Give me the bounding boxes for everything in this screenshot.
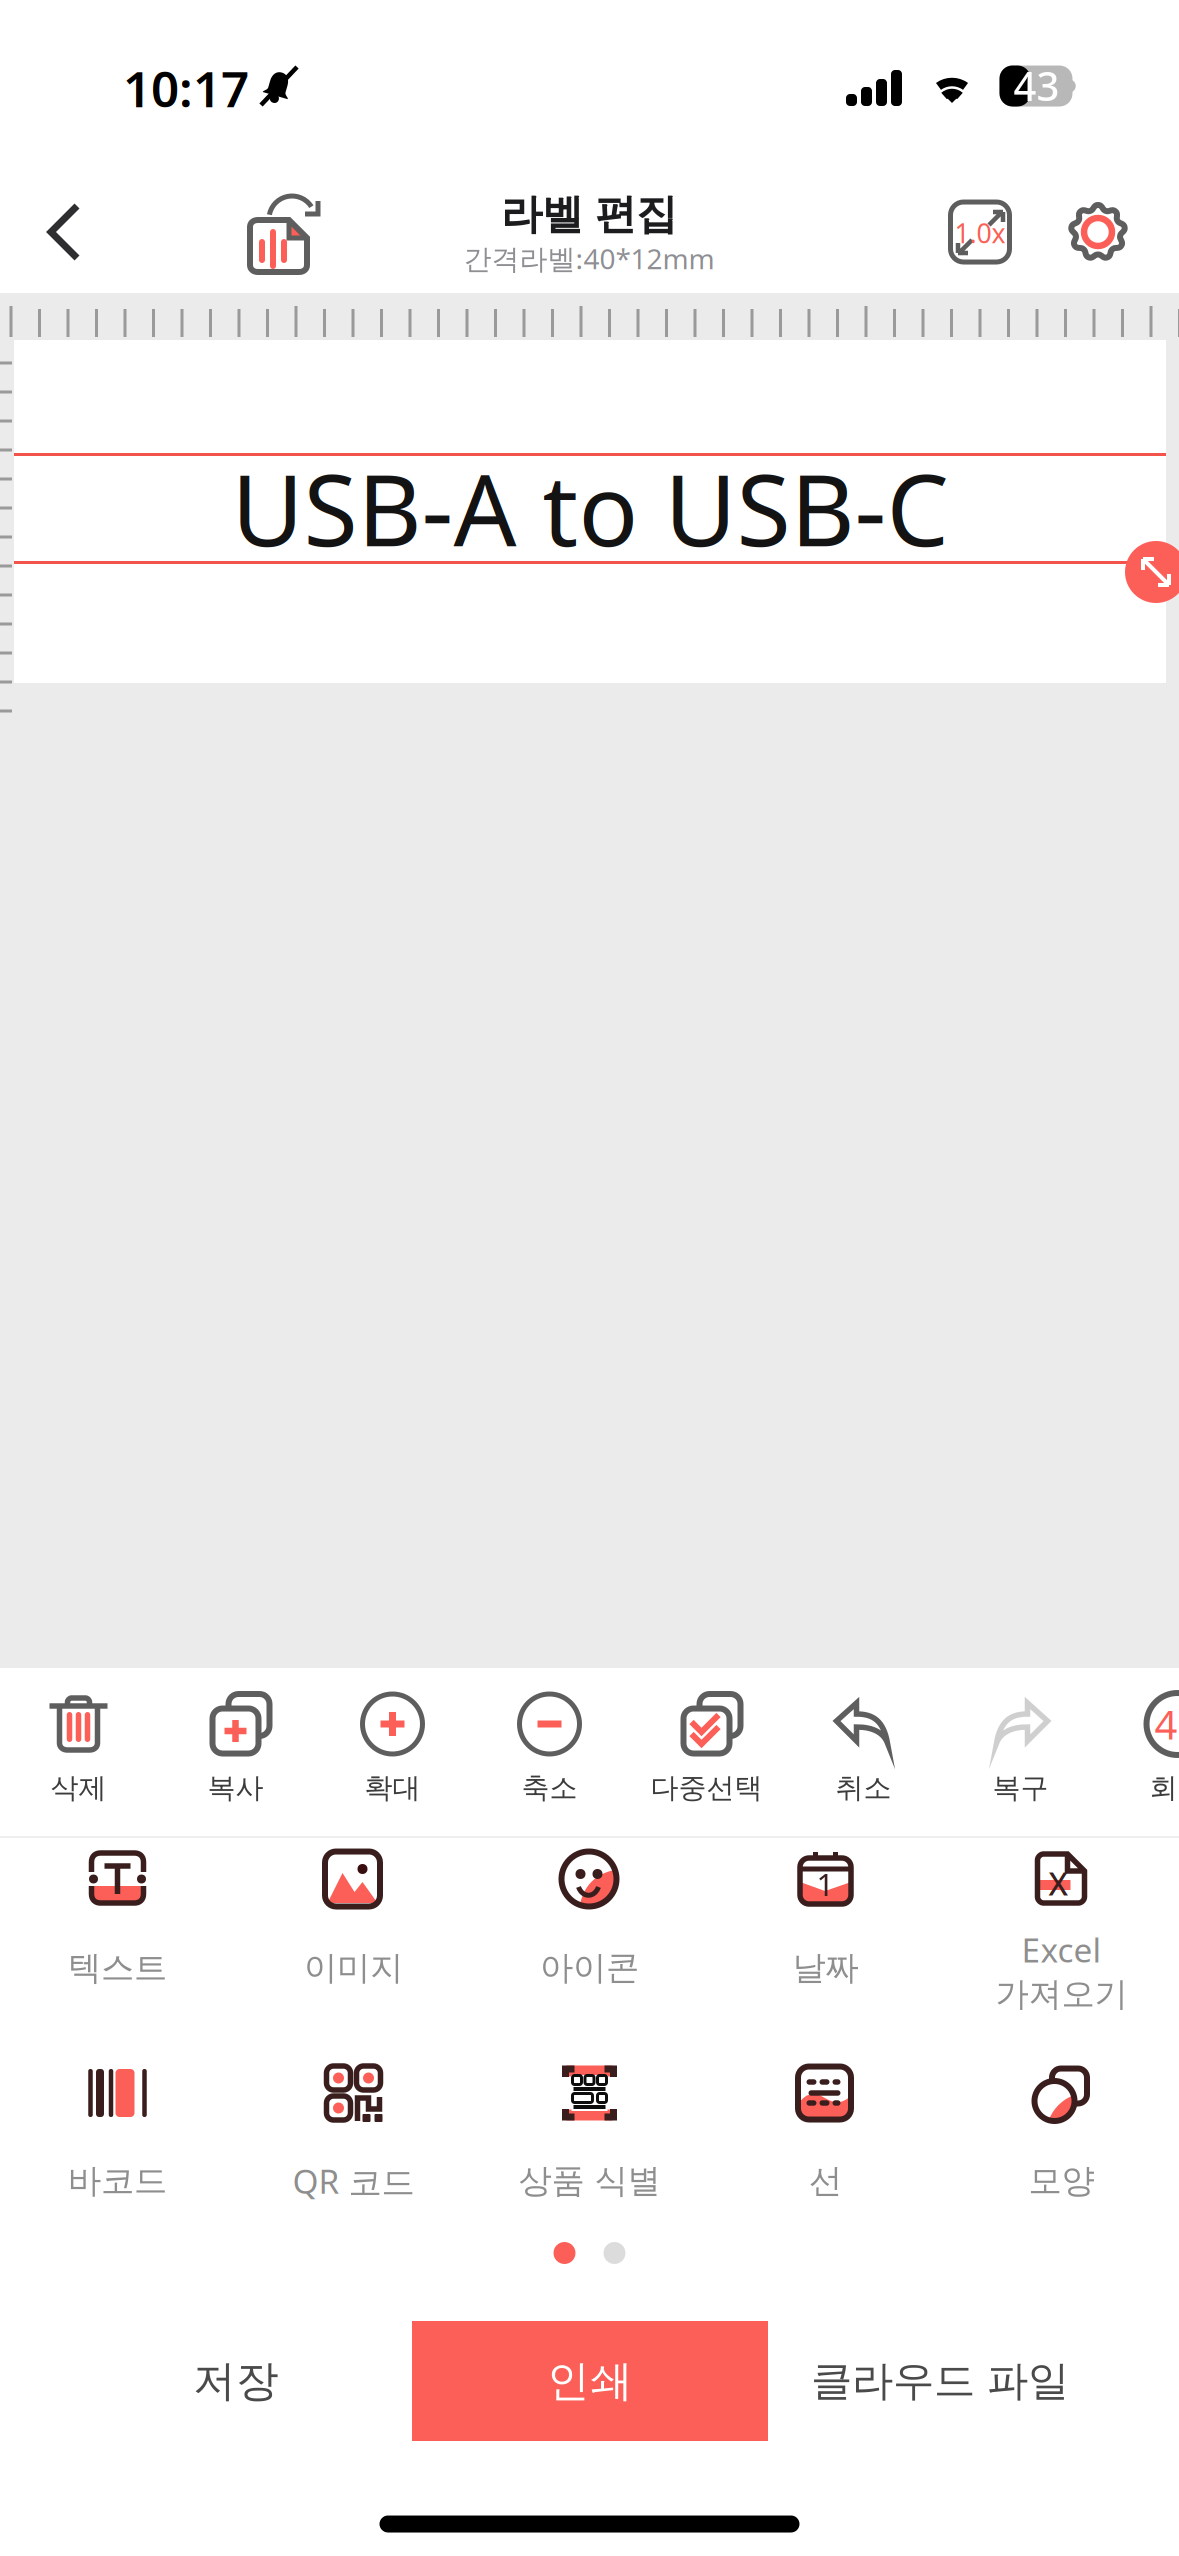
button[interactable]: Back <box>0 170 130 294</box>
staticText: X <box>1048 1862 1068 1904</box>
staticText: 상품 식별 <box>518 2160 660 2201</box>
button[interactable]: 45 <box>1099 1668 1179 1838</box>
button[interactable]: 모양 <box>944 2056 1179 2248</box>
staticText: 이미지 <box>304 1947 403 1988</box>
button[interactable]: Zoom level <box>920 170 1040 294</box>
button[interactable]: 1 <box>708 1838 943 2030</box>
staticText: 취소 <box>835 1771 891 1805</box>
staticText: 인쇄 <box>547 2355 633 2407</box>
button[interactable]: 복사 <box>157 1668 314 1838</box>
button[interactable]: 이미지 <box>236 1838 471 2030</box>
button[interactable]: 클라우드 파일 <box>775 2321 1105 2441</box>
button[interactable]: QR 코드 <box>236 2056 471 2248</box>
staticText: USB-A to USB-C <box>231 442 948 573</box>
staticText: 복사 <box>207 1771 263 1805</box>
button[interactable]: Settings <box>1038 170 1158 294</box>
staticText: 1.0x <box>954 215 1005 251</box>
staticText: 회전 <box>1149 1771 1179 1805</box>
button[interactable]: 인쇄 <box>412 2321 768 2441</box>
staticText: 축소 <box>521 1771 577 1805</box>
staticText: 아이콘 <box>540 1947 639 1988</box>
staticText: 확대 <box>364 1771 420 1805</box>
button[interactable]: 텍스트 <box>0 1838 235 2030</box>
staticText: 모양 <box>1028 2160 1094 2201</box>
staticText: 간격라벨:40*12mm <box>463 240 714 277</box>
button[interactable]: 아이콘 <box>472 1838 707 2030</box>
staticText: 라벨 편집 <box>501 189 677 240</box>
staticText: 삭제 <box>50 1771 106 1805</box>
staticText: 텍스트 <box>68 1947 167 1988</box>
button[interactable]: 취소 <box>785 1668 942 1838</box>
button[interactable]: X <box>944 1838 1179 2030</box>
staticText: 복구 <box>992 1771 1048 1805</box>
button[interactable]: 상품 식별 <box>472 2056 707 2248</box>
button[interactable]: 삭제 <box>0 1668 157 1838</box>
staticText: 저장 <box>193 2355 279 2407</box>
button[interactable]: 저장 <box>126 2321 346 2441</box>
staticText: 날짜 <box>792 1947 858 1988</box>
staticText: 선 <box>809 2160 842 2201</box>
staticText: 클라우드 파일 <box>811 2356 1069 2406</box>
button[interactable]: 바코드 <box>0 2056 235 2248</box>
staticText: 45 <box>1154 1697 1179 1750</box>
button[interactable]: 다중선택 <box>628 1668 785 1838</box>
button[interactable]: 선 <box>708 2056 943 2248</box>
staticText: 바코드 <box>68 2160 167 2201</box>
staticText: 43 <box>1013 59 1059 112</box>
staticText: 다중선택 <box>650 1771 762 1805</box>
button[interactable]: 확대 <box>314 1668 471 1838</box>
button[interactable]: Rotate label <box>217 170 357 294</box>
staticText: Excel <box>1021 1927 1101 1972</box>
staticText: 가져오기 <box>995 1974 1127 2015</box>
staticText: QR 코드 <box>292 2159 414 2203</box>
button[interactable]: 복구 <box>942 1668 1099 1838</box>
staticText: 10:17 <box>123 55 249 121</box>
staticText: 1 <box>816 1864 834 1904</box>
button[interactable]: 축소 <box>471 1668 628 1838</box>
